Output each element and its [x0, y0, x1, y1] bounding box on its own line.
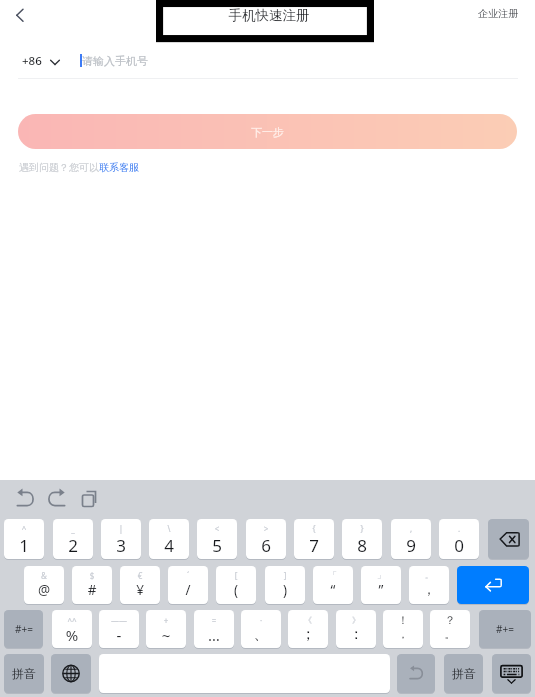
staticText: }	[342, 523, 382, 534]
staticText: -	[99, 625, 139, 645]
staticText: 遇到问题？您可以	[19, 161, 99, 174]
button[interactable]: 拼音	[4, 654, 44, 693]
staticText: #+=	[15, 622, 33, 636]
staticText: 8	[342, 534, 382, 557]
button[interactable]: [	[216, 566, 256, 604]
staticText: 0	[439, 534, 479, 557]
button[interactable]: 。	[430, 610, 470, 648]
button[interactable]: Switch language	[51, 654, 91, 693]
staticText: 3	[101, 534, 141, 557]
button[interactable]: #+=	[4, 610, 43, 648]
staticText: \	[149, 523, 189, 534]
button[interactable]: .	[439, 519, 479, 559]
staticText: ；	[288, 625, 328, 644]
staticText: ：	[336, 625, 376, 644]
staticText: #	[72, 581, 112, 599]
staticText: €	[120, 570, 160, 581]
button[interactable]: ·	[241, 610, 281, 648]
button[interactable]: {	[294, 519, 334, 559]
staticText: %	[52, 625, 92, 645]
staticText: @	[24, 581, 64, 599]
staticText: )	[265, 581, 305, 599]
button[interactable]: ´	[168, 566, 208, 604]
staticText: &	[24, 570, 64, 581]
button[interactable]: 》	[336, 610, 376, 648]
staticText: {	[294, 523, 334, 534]
staticText: ？	[430, 613, 470, 627]
button[interactable]: Undo	[13, 487, 37, 511]
button[interactable]: Hide keyboard	[492, 654, 531, 693]
staticText: 企业注册	[478, 7, 518, 20]
staticText: +	[146, 615, 186, 626]
button[interactable]: Enter	[457, 566, 529, 604]
staticText: 6	[246, 534, 286, 557]
button[interactable]: Undo	[397, 654, 435, 693]
staticText: 5	[197, 534, 237, 557]
button[interactable]: Back	[5, 1, 35, 31]
button[interactable]: <	[197, 519, 237, 559]
button[interactable]: 拼音	[444, 654, 483, 693]
button[interactable]: 联系客服	[99, 161, 139, 174]
button[interactable]: Copy	[78, 487, 102, 511]
button[interactable]: Backspace	[488, 519, 529, 559]
staticText: +86	[22, 53, 42, 69]
staticText: 。	[430, 627, 470, 641]
button[interactable]: +	[146, 610, 186, 648]
button[interactable]: $	[72, 566, 112, 604]
button[interactable]: 」	[361, 566, 401, 604]
staticText: ——	[99, 615, 139, 626]
staticText: 》	[336, 615, 376, 625]
button[interactable]: Redo	[45, 487, 69, 511]
button[interactable]: _	[53, 519, 93, 559]
staticText: 拼音	[12, 666, 36, 681]
staticText: 下一步	[251, 125, 284, 139]
button[interactable]: +86	[22, 53, 62, 69]
button[interactable]: 下一步	[18, 114, 517, 149]
button[interactable]: \	[149, 519, 189, 559]
button[interactable]: }	[342, 519, 382, 559]
button[interactable]: 《	[288, 610, 328, 648]
button[interactable]: 「	[313, 566, 353, 604]
button[interactable]: €	[120, 566, 160, 604]
staticText: >	[246, 523, 286, 534]
button[interactable]: &	[24, 566, 64, 604]
staticText: 联系客服	[99, 161, 139, 174]
staticText: (	[216, 581, 256, 599]
staticText: _	[53, 523, 93, 534]
button[interactable]: ^	[4, 519, 44, 559]
staticText: ”	[361, 581, 401, 599]
button[interactable]: ,	[391, 519, 431, 559]
button[interactable]: =	[194, 610, 234, 648]
staticText: 、	[241, 625, 281, 644]
staticText: …	[194, 625, 234, 645]
button[interactable]: ]	[265, 566, 305, 604]
staticText: 4	[149, 534, 189, 557]
staticText: 手机快速注册	[160, 7, 378, 24]
staticText: <	[197, 523, 237, 534]
button[interactable]: |	[101, 519, 141, 559]
button[interactable]: #+=	[479, 610, 531, 648]
staticText: “	[313, 581, 353, 599]
button[interactable]: ——	[99, 610, 139, 648]
staticText: 「	[313, 570, 353, 580]
button[interactable]: ^^	[52, 610, 92, 648]
staticText: [	[216, 570, 256, 581]
staticText: 1	[4, 534, 44, 557]
staticText: #+=	[496, 622, 514, 636]
staticText: ^^	[52, 615, 92, 626]
staticText: ！	[383, 613, 423, 627]
staticText: 」	[361, 570, 401, 580]
staticText: ¥	[120, 581, 160, 599]
staticText: 2	[53, 534, 93, 557]
staticText: 拼音	[452, 666, 476, 681]
button[interactable]: 。	[409, 566, 449, 604]
staticText: ，	[383, 627, 423, 641]
button[interactable]: ，	[383, 610, 423, 648]
staticText: 《	[288, 615, 328, 625]
button[interactable]: >	[246, 519, 286, 559]
button[interactable]: 企业注册	[478, 7, 518, 20]
